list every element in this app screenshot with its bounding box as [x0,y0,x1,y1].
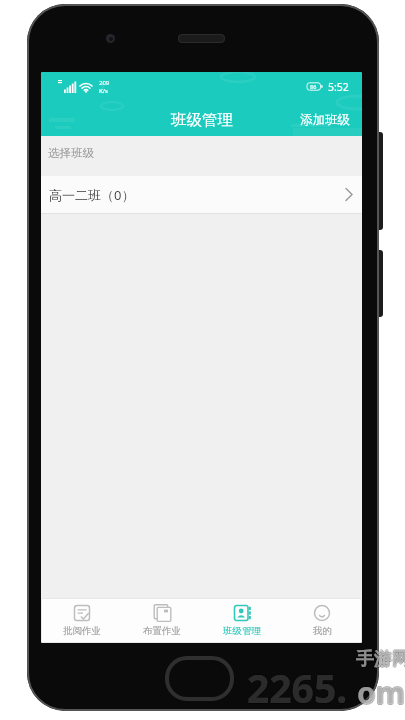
staticText: 5:52 [328,80,349,94]
button[interactable]: 布置作业 [122,598,202,643]
staticText: 2265. [248,661,349,714]
staticText: 手游网 [355,648,405,671]
button[interactable]: 添加班级 [300,99,362,140]
staticText: 选择班级 [48,146,94,160]
staticText: 添加班级 [300,112,350,128]
staticText: 班级管理 [223,625,261,637]
button[interactable]: 我的 [282,598,362,643]
staticText: 批阅作业 [63,625,101,637]
staticText: om [358,672,405,713]
staticText: 布置作业 [143,625,181,637]
button[interactable]: 班级管理 [202,598,282,643]
staticText: om [357,672,405,713]
staticText: 手游网 [356,648,405,671]
staticText: 我的 [313,625,332,637]
staticText: K/s [99,87,108,95]
staticText: 班级管理 [171,110,233,130]
staticText: om [357,671,405,712]
staticText: 2265. [247,661,348,714]
staticText: om [356,672,404,713]
button[interactable]: 高一二班（0） [41,176,362,213]
staticText: 手游网 [357,648,405,671]
staticText: 2265. [247,662,348,715]
staticText: om [357,673,405,714]
staticText: 手游网 [356,649,405,672]
staticText: 2265. [247,660,348,713]
staticText: 86 [310,83,317,90]
staticText: 2265. [246,661,347,714]
staticText: 209 [99,79,110,87]
button[interactable]: 批阅作业 [41,598,122,643]
staticText: 高一二班（0） [49,186,135,204]
staticText: 手游网 [356,647,405,670]
